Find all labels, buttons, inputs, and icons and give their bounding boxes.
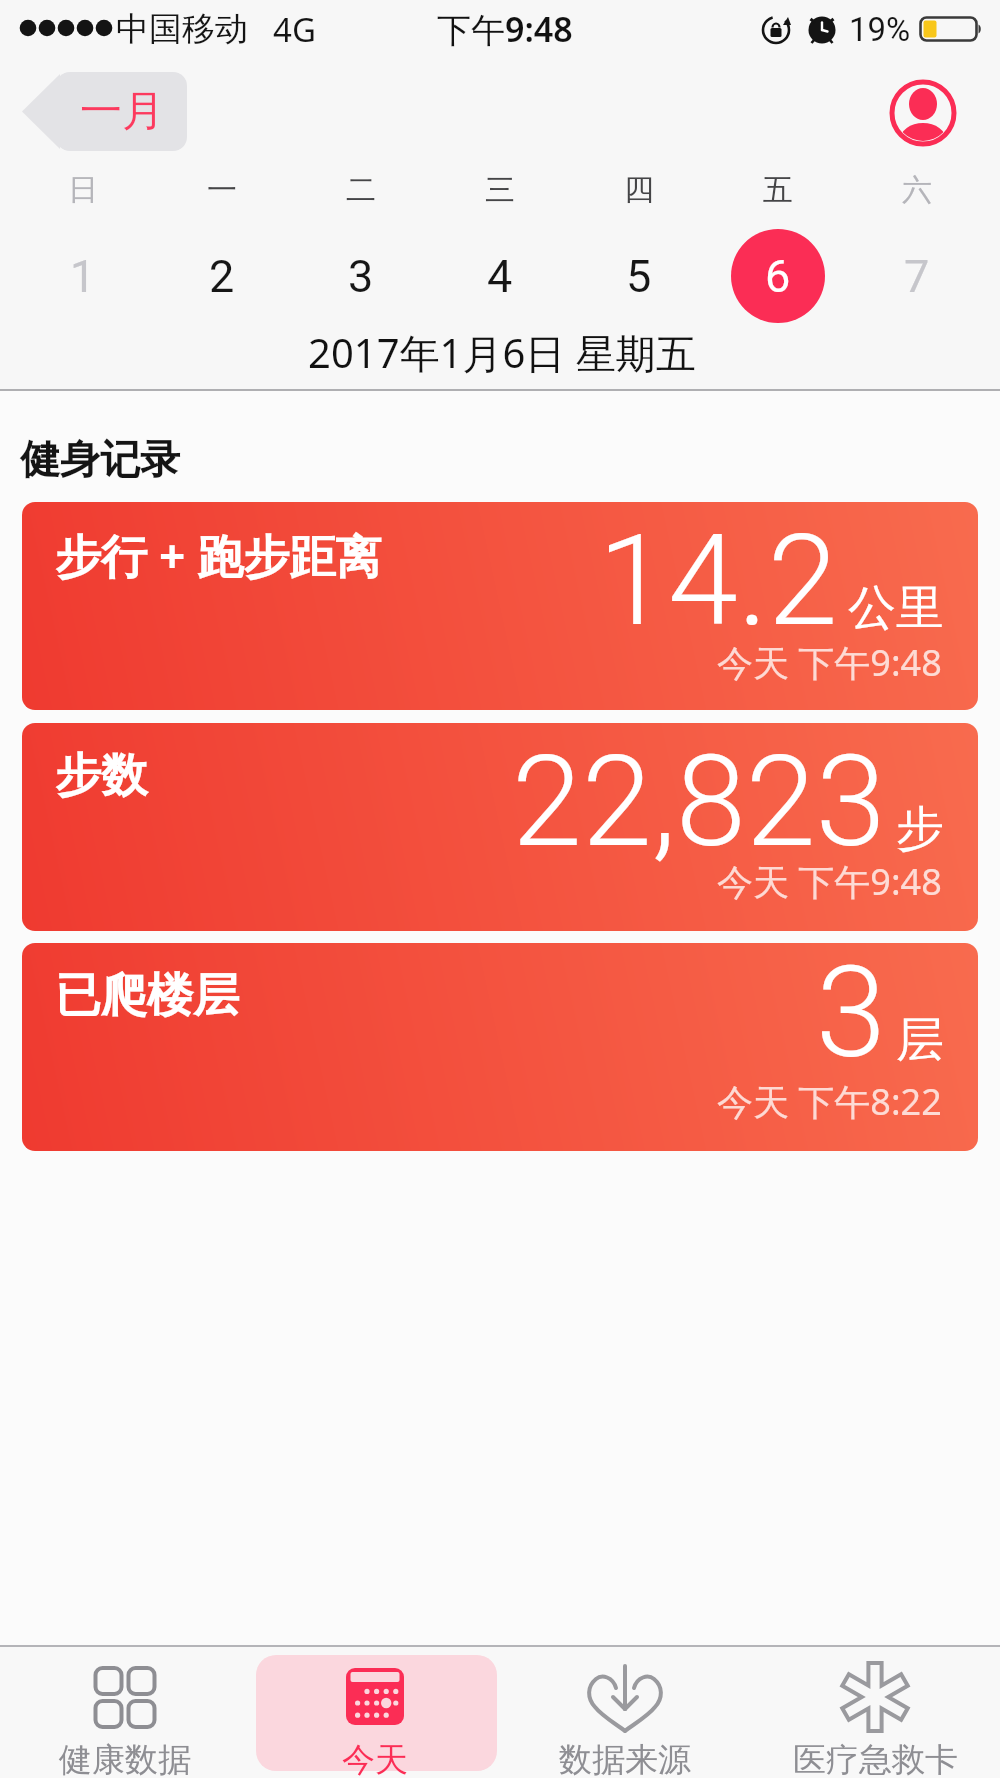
button[interactable]: 已爬楼层 (22, 943, 978, 1151)
staticText: 五 (763, 171, 793, 209)
button[interactable]: 健康数据 (5, 1650, 245, 1778)
staticText: 已爬楼层 (55, 967, 239, 1025)
staticText: 层 (896, 1010, 944, 1070)
staticText: 四 (624, 171, 654, 209)
staticText: 医疗急救卡 (793, 1739, 958, 1778)
button[interactable]: 一月 (22, 72, 187, 151)
staticText: 下午9:48 (437, 6, 573, 52)
staticText: 6 (765, 250, 791, 303)
staticText: 二 (346, 171, 376, 209)
staticText: 步数 (55, 747, 147, 805)
staticText: 今天 下午8:22 (717, 1077, 942, 1126)
button[interactable]: 步行 + 跑步距离 (22, 502, 978, 710)
staticText: 22,823 (512, 728, 886, 876)
staticText: 一 (207, 171, 237, 209)
staticText: 7 (904, 250, 930, 303)
staticText: 2 (209, 250, 235, 303)
staticText: 3 (816, 943, 886, 1087)
staticText: 公里 (848, 578, 944, 638)
button[interactable]: 步数 (22, 723, 978, 931)
staticText: 六 (902, 171, 932, 209)
staticText: 中国移动 (116, 8, 248, 50)
staticText: 5 (626, 250, 652, 303)
button[interactable]: 今天 (255, 1650, 495, 1778)
staticText: 健身记录 (20, 434, 180, 484)
staticText: 1 (70, 250, 96, 303)
button[interactable]: 医疗急救卡 (755, 1650, 995, 1778)
staticText: 步行 + 跑步距离 (55, 524, 382, 587)
staticText: 今天 下午9:48 (717, 638, 942, 687)
button[interactable]: 数据来源 (505, 1650, 745, 1778)
staticText: 19% (849, 10, 911, 49)
button[interactable] (889, 79, 957, 147)
staticText: 三 (485, 171, 515, 209)
staticText: 4 (487, 250, 513, 303)
staticText: 一月 (80, 85, 164, 138)
staticText: 健康数据 (59, 1739, 191, 1778)
staticText: 3 (348, 250, 374, 303)
staticText: 4G (273, 7, 316, 52)
staticText: 日 (68, 171, 98, 209)
staticText: 14.2 (598, 507, 838, 655)
staticText: 今天 (342, 1739, 408, 1778)
staticText: 步 (896, 799, 944, 859)
staticText: 2017年1月6日 星期五 (308, 325, 696, 380)
staticText: 数据来源 (559, 1739, 691, 1778)
staticText: 今天 下午9:48 (717, 857, 942, 906)
